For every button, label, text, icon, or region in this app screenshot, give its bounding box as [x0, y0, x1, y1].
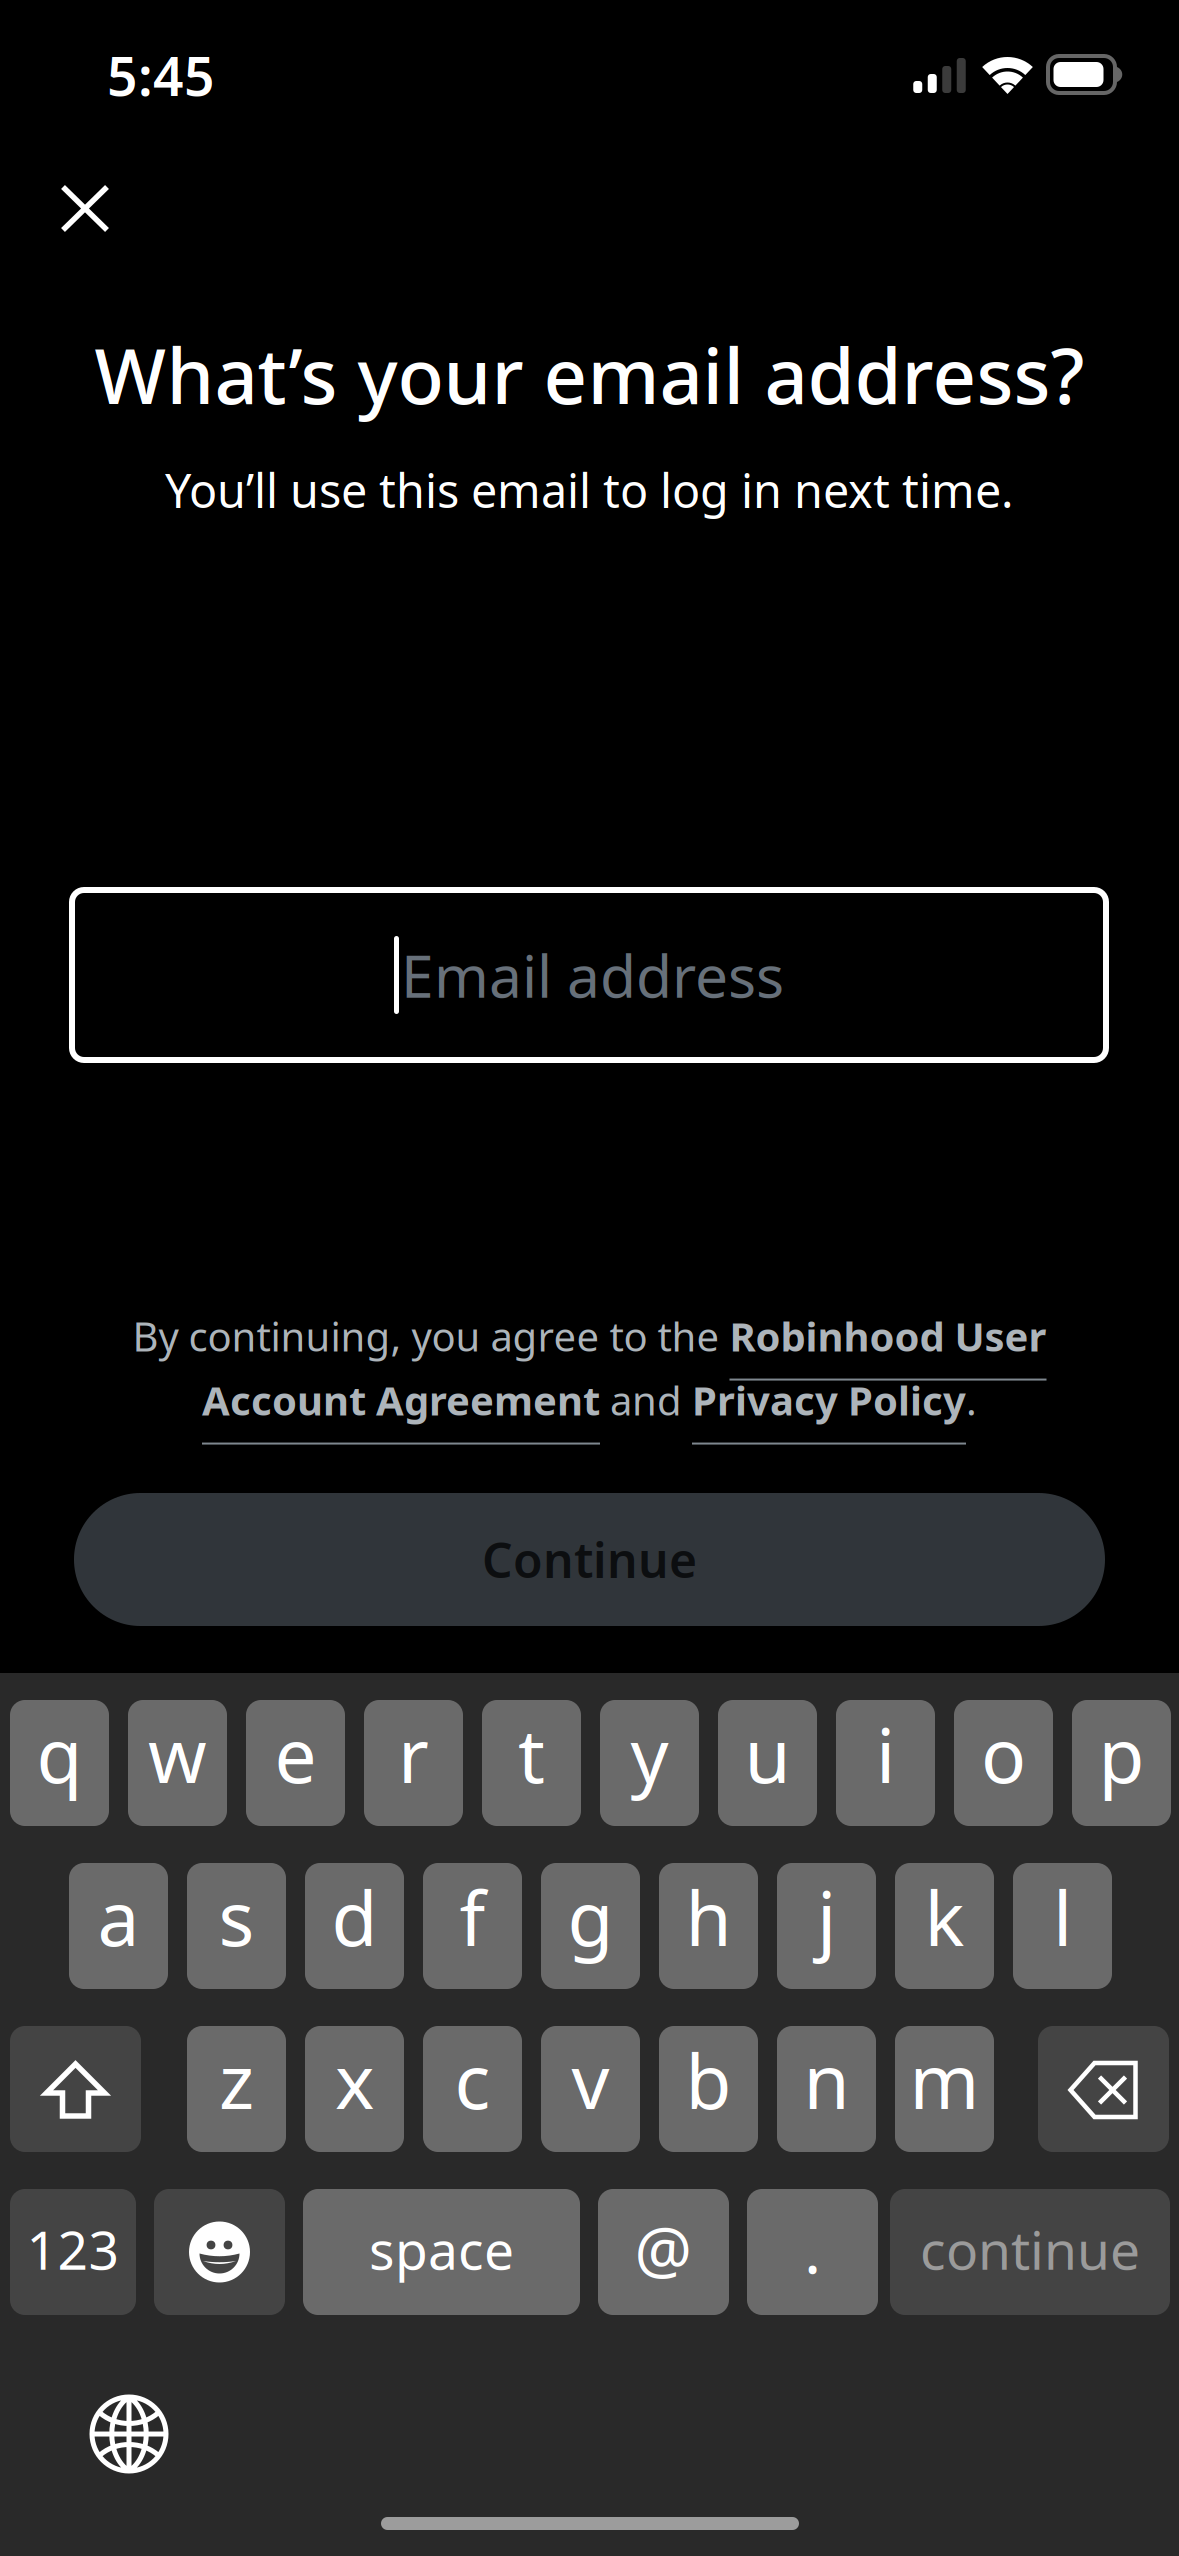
button[interactable]: . [747, 2189, 878, 2315]
staticText: v [571, 2030, 609, 2130]
button[interactable]: Emoji [154, 2189, 285, 2315]
button[interactable]: 123 [10, 2189, 136, 2315]
staticText: x [335, 2030, 374, 2130]
staticText: n [803, 2030, 849, 2130]
button[interactable]: d [305, 1863, 404, 1989]
button[interactable]: y [600, 1700, 699, 1826]
staticText: g [567, 1867, 613, 1967]
button[interactable]: Shift [10, 2026, 141, 2152]
button[interactable]: x [305, 2026, 404, 2152]
staticText: @ [634, 2206, 692, 2291]
button[interactable]: j [777, 1863, 876, 1989]
button[interactable]: n [777, 2026, 876, 2152]
button[interactable]: l [1013, 1863, 1112, 1989]
staticText: You’ll use this email to log in next tim… [165, 459, 1014, 521]
staticText: q [36, 1704, 82, 1804]
button[interactable]: h [659, 1863, 758, 1989]
button[interactable]: o [954, 1700, 1053, 1826]
staticText: d [331, 1867, 377, 1967]
button[interactable]: Privacy Policy [692, 1373, 966, 1444]
button[interactable]: u [718, 1700, 817, 1826]
staticText: r [398, 1704, 429, 1804]
button[interactable]: space [303, 2189, 580, 2315]
staticText: k [924, 1867, 964, 1967]
button[interactable]: Next keyboard [89, 2394, 169, 2474]
button[interactable]: f [423, 1863, 522, 1989]
button[interactable]: Email address [72, 890, 1106, 1060]
staticText: Continue [482, 1528, 697, 1591]
staticText: Email address [401, 936, 784, 1014]
staticText: Privacy Policy [692, 1373, 966, 1426]
staticText: p [1098, 1704, 1144, 1804]
staticText: f [459, 1867, 485, 1967]
staticText: o [981, 1704, 1026, 1804]
button[interactable]: c [423, 2026, 522, 2152]
staticText: h [685, 1867, 731, 1967]
staticText: c [454, 2030, 490, 2130]
staticText: u [744, 1704, 790, 1804]
button[interactable]: w [128, 1700, 227, 1826]
button[interactable]: s [187, 1863, 286, 1989]
button[interactable]: @ [598, 2189, 729, 2315]
button[interactable]: Close [26, 150, 144, 267]
button[interactable]: b [659, 2026, 758, 2152]
staticText: w [148, 1704, 207, 1804]
button[interactable]: z [187, 2026, 286, 2152]
staticText: y [630, 1704, 668, 1804]
button[interactable]: m [895, 2026, 994, 2152]
staticText: Robinhood User [729, 1309, 1046, 1362]
button[interactable]: v [541, 2026, 640, 2152]
button[interactable]: continue [890, 2189, 1170, 2315]
staticText: What’s your email address? [94, 324, 1084, 425]
staticText: and [600, 1373, 692, 1426]
staticText: continue [920, 2214, 1140, 2284]
button[interactable]: e [246, 1700, 345, 1826]
staticText: z [219, 2030, 254, 2130]
staticText: t [518, 1704, 545, 1804]
button[interactable]: k [895, 1863, 994, 1989]
button[interactable]: r [364, 1700, 463, 1826]
staticText: 5:45 [107, 40, 215, 111]
staticText: . [804, 2206, 821, 2291]
button[interactable]: a [69, 1863, 168, 1989]
button[interactable]: t [482, 1700, 581, 1826]
staticText: b [685, 2030, 731, 2130]
button[interactable]: i [836, 1700, 935, 1826]
button[interactable]: p [1072, 1700, 1171, 1826]
staticText: s [218, 1867, 254, 1967]
button[interactable]: Robinhood User [729, 1309, 1046, 1380]
button[interactable]: Account Agreement [202, 1373, 600, 1444]
button[interactable]: Continue [74, 1493, 1105, 1626]
button[interactable]: g [541, 1863, 640, 1989]
staticText: . [966, 1373, 977, 1426]
staticText: Account Agreement [202, 1373, 600, 1426]
staticText: 123 [26, 2214, 119, 2284]
button[interactable]: Delete [1038, 2026, 1169, 2152]
button[interactable]: q [10, 1700, 109, 1826]
staticText: j [817, 1867, 836, 1967]
staticText: e [274, 1704, 316, 1804]
staticText: l [1053, 1867, 1072, 1967]
staticText: By continuing, you agree to the [132, 1309, 729, 1362]
staticText: a [97, 1867, 139, 1967]
staticText: space [369, 2214, 514, 2284]
staticText: i [876, 1704, 895, 1804]
staticText: m [909, 2030, 979, 2130]
